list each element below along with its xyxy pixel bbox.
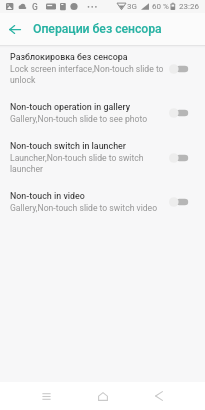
button[interactable]: Toggle	[169, 194, 193, 210]
button[interactable]: Back	[131, 382, 187, 410]
staticText: 23:26	[179, 2, 199, 11]
button[interactable]: Toggle	[169, 150, 193, 166]
button[interactable]: Home	[75, 382, 131, 410]
staticText: Gallery,Non-touch slide to see photo	[10, 114, 148, 124]
staticText: Non-touch switch in launcher	[10, 141, 127, 151]
staticText: Gallery,Non-touch slide to switch video	[10, 203, 158, 213]
staticText: Разблокировка без сенсора	[10, 52, 128, 62]
staticText: Launcher,Non-touch slide to switch launc…	[10, 153, 167, 174]
button[interactable]: Разблокировка без сенсора	[0, 48, 205, 98]
button[interactable]: Non-touch operation in gallery	[0, 98, 205, 137]
button[interactable]: Back	[0, 14, 30, 44]
button[interactable]: Toggle	[169, 61, 193, 77]
staticText: Lock screen interface,Non-touch slide to…	[10, 64, 167, 85]
staticText: Non-touch in video	[10, 191, 85, 201]
staticText: 3G	[127, 2, 137, 11]
button[interactable]: Non-touch in video	[0, 187, 205, 226]
button[interactable]: Non-touch switch in launcher	[0, 137, 205, 187]
button[interactable]: Recent apps	[18, 382, 75, 410]
staticText: Операции без сенсора	[33, 22, 162, 36]
staticText: G	[32, 2, 38, 12]
staticText: 60 %	[152, 2, 169, 11]
button[interactable]: Toggle	[169, 105, 193, 121]
staticText: Non-touch operation in gallery	[10, 102, 131, 112]
